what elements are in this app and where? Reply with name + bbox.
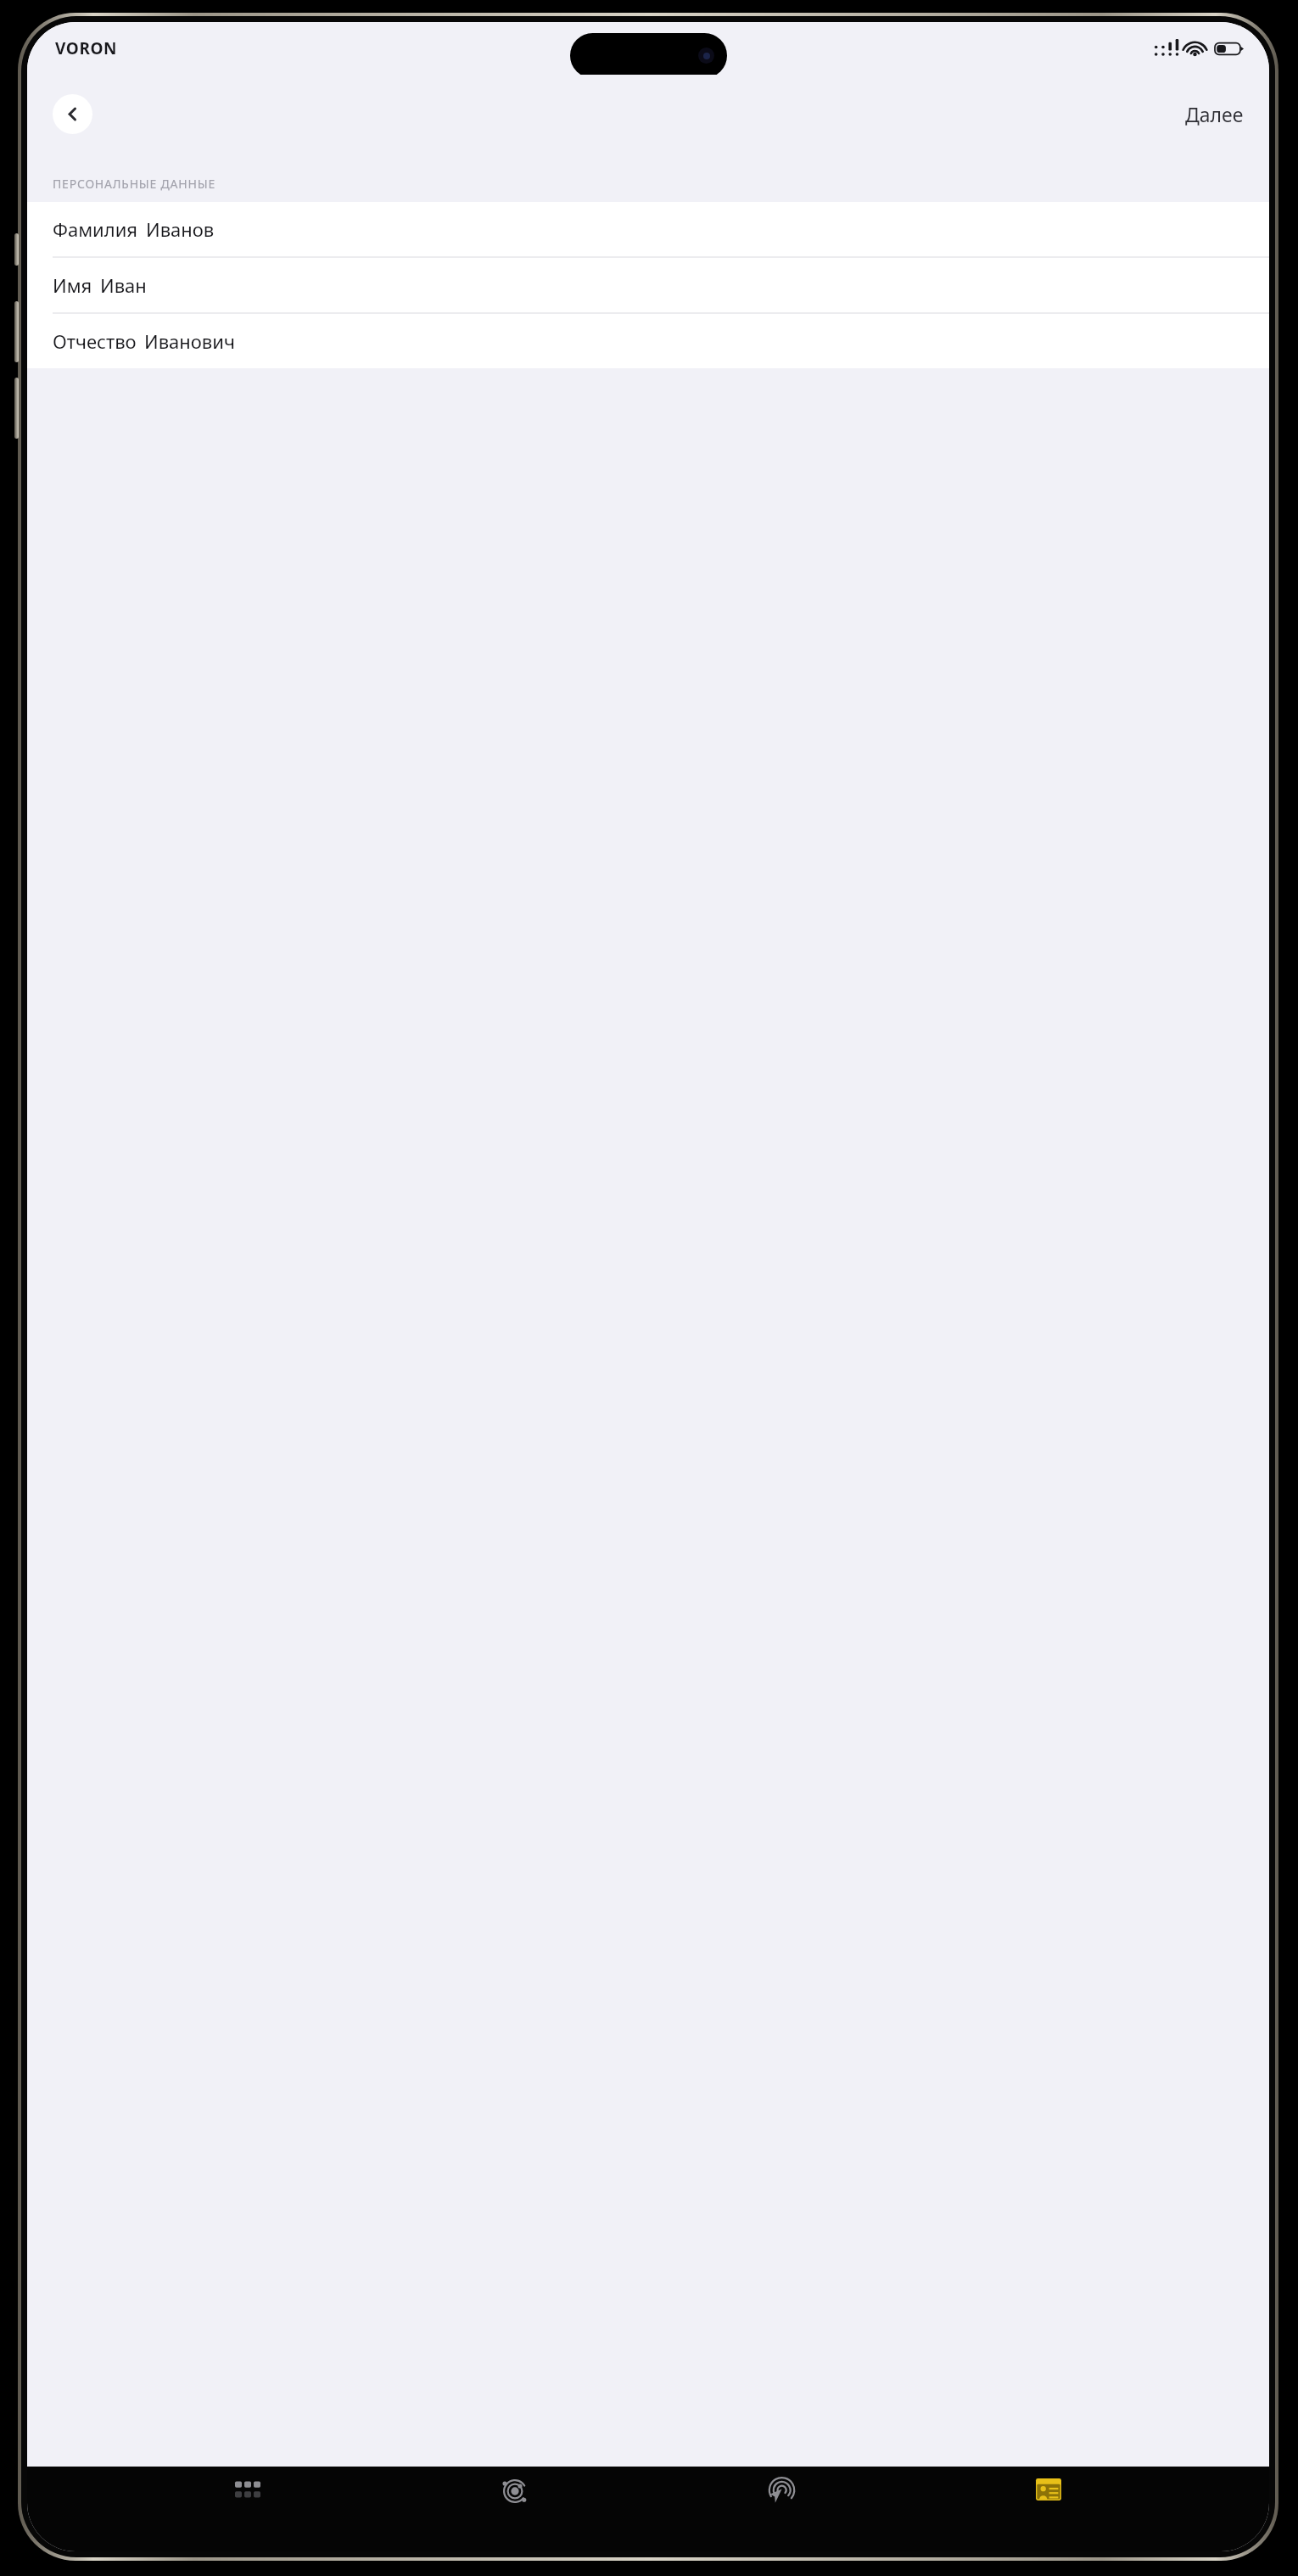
staticText: Фамилия (53, 216, 138, 242)
staticText: Иванов (146, 216, 215, 242)
staticText: VORON (55, 37, 118, 59)
button[interactable]: Сканирование (735, 2467, 828, 2551)
button[interactable]: Радар (468, 2467, 562, 2551)
button[interactable]: Профиль (1002, 2467, 1095, 2551)
staticText: Имя (53, 272, 92, 298)
staticText: Отчество (53, 328, 137, 354)
button[interactable]: Назад (53, 94, 92, 134)
button[interactable]: Приложения (201, 2467, 294, 2551)
button[interactable]: Отчество (27, 314, 1269, 368)
button[interactable]: Далее (1160, 91, 1269, 137)
button[interactable]: Фамилия (27, 202, 1269, 256)
button[interactable]: Имя (27, 258, 1269, 312)
staticText: ПЕРСОНАЛЬНЫЕ ДАННЫЕ (53, 176, 215, 192)
staticText: Иван (100, 272, 147, 298)
staticText: Далее (1185, 101, 1244, 127)
staticText: Иванович (144, 328, 235, 354)
